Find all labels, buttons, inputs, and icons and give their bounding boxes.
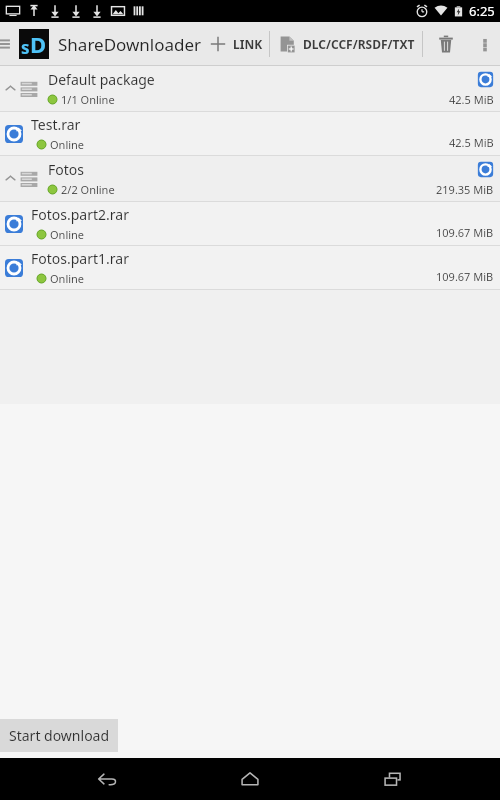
button[interactable]: Start download xyxy=(0,719,118,752)
button[interactable]: Recent apps xyxy=(357,758,429,800)
staticText: 1/1 Online xyxy=(61,92,115,107)
button[interactable]: Home xyxy=(214,758,286,800)
staticText: Fotos.part1.rar xyxy=(31,249,129,268)
staticText: s xyxy=(21,36,30,59)
button[interactable]: DLC/CCF/RSDF/TXT xyxy=(270,22,422,66)
staticText: Test.rar xyxy=(31,115,81,134)
button[interactable]: Navigation drawer xyxy=(0,22,16,66)
button[interactable]: LINK xyxy=(202,22,269,66)
staticText: 6:25 xyxy=(469,2,495,20)
staticText: 219.35 MiB xyxy=(436,182,494,197)
staticText: Fotos xyxy=(48,160,84,179)
staticText: ShareDownloader xyxy=(58,33,202,56)
button[interactable]: More options xyxy=(469,22,500,66)
staticText: Online xyxy=(50,227,85,242)
button[interactable]: Fotos.part2.rar xyxy=(0,202,500,246)
button[interactable]: Delete xyxy=(423,22,469,66)
staticText: LINK xyxy=(233,36,263,52)
staticText: 2/2 Online xyxy=(61,182,115,197)
staticText: Online xyxy=(50,137,85,152)
staticText: Online xyxy=(50,271,85,286)
staticText: 42.5 MiB xyxy=(449,92,494,107)
staticText: 109.67 MiB xyxy=(436,225,494,240)
button[interactable]: Back xyxy=(71,758,143,800)
button[interactable]: Fotos.part1.rar xyxy=(0,246,500,290)
staticText: 42.5 MiB xyxy=(449,135,494,150)
staticText: Start download xyxy=(9,726,110,745)
staticText: DLC/CCF/RSDF/TXT xyxy=(303,36,415,52)
button[interactable]: Fotos xyxy=(0,156,500,202)
staticText: D xyxy=(30,29,47,59)
button[interactable]: Test.rar xyxy=(0,112,500,156)
staticText: Default package xyxy=(48,70,155,89)
staticText: 109.67 MiB xyxy=(436,269,494,284)
button[interactable]: Default package xyxy=(0,66,500,112)
staticText: Fotos.part2.rar xyxy=(31,205,129,224)
